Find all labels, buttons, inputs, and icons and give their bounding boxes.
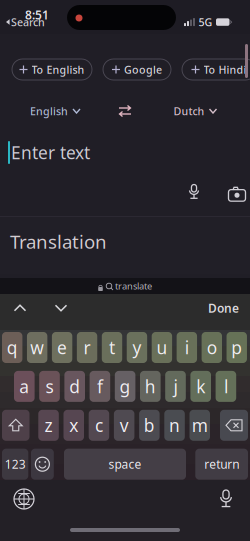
button[interactable]: Switch keyboard (9, 484, 39, 514)
staticText: y (132, 336, 141, 359)
staticText: l (224, 375, 228, 398)
button[interactable]: return (195, 449, 248, 480)
button[interactable]: l (216, 371, 236, 402)
staticText: b (144, 414, 155, 437)
staticText: h (145, 375, 156, 398)
button[interactable]: s (39, 371, 60, 402)
button[interactable]: e (52, 332, 72, 363)
button[interactable]: Swap languages (104, 99, 146, 123)
button[interactable]: Dictate (211, 484, 241, 514)
button[interactable]: z (38, 410, 59, 441)
button[interactable]: w (27, 332, 47, 363)
button[interactable]: Search (6, 16, 45, 28)
button[interactable]: t (102, 332, 122, 363)
button[interactable]: Delete (220, 410, 248, 441)
button[interactable]: To Hindi (182, 59, 250, 80)
staticText: To Hindi (203, 62, 246, 77)
button[interactable]: translate (0, 278, 250, 294)
staticText: Search (11, 15, 45, 29)
staticText: Translation (10, 229, 107, 254)
button[interactable]: space (64, 449, 186, 480)
button[interactable]: f (90, 371, 110, 402)
staticText: i (185, 336, 189, 359)
staticText: o (207, 336, 217, 359)
button[interactable]: v (114, 410, 134, 441)
button[interactable]: n (164, 410, 185, 441)
staticText: a (19, 375, 29, 398)
button[interactable]: b (139, 410, 160, 441)
button[interactable]: Google (103, 59, 171, 80)
button[interactable]: h (140, 371, 161, 402)
button[interactable]: Voice input (182, 180, 206, 204)
button[interactable]: c (89, 410, 109, 441)
button[interactable]: i (177, 332, 197, 363)
staticText: translate (115, 280, 152, 292)
staticText: p (231, 336, 242, 359)
staticText: w (30, 336, 44, 359)
button[interactable]: Next field (50, 297, 72, 319)
staticText: 123 (5, 456, 26, 472)
button[interactable]: Shift (2, 410, 29, 441)
button[interactable]: To English (12, 59, 92, 80)
staticText: Done (208, 300, 239, 316)
button[interactable]: g (115, 371, 135, 402)
button[interactable]: r (77, 332, 97, 363)
staticText: Enter text (11, 141, 90, 164)
staticText: Google (124, 62, 162, 77)
staticText: c (95, 414, 103, 437)
button[interactable]: Done (197, 297, 239, 319)
staticText: r (83, 336, 90, 359)
staticText: g (120, 375, 131, 398)
button[interactable]: k (190, 371, 211, 402)
staticText: n (169, 414, 180, 437)
staticText: space (108, 456, 141, 472)
button[interactable]: m (189, 410, 210, 441)
button[interactable]: q (2, 332, 22, 363)
button[interactable]: Previous field (9, 297, 31, 319)
staticText: j (173, 375, 177, 398)
staticText: q (7, 336, 18, 359)
staticText: e (57, 336, 67, 359)
staticText: m (192, 414, 208, 437)
staticText: 5G (198, 15, 212, 29)
button[interactable]: o (202, 332, 222, 363)
button[interactable]: Camera input (225, 180, 249, 204)
staticText: f (97, 375, 103, 398)
staticText: x (69, 414, 78, 437)
button[interactable]: j (165, 371, 186, 402)
button[interactable]: u (152, 332, 172, 363)
button[interactable]: Emoji (31, 449, 54, 480)
button[interactable]: a (14, 371, 35, 402)
staticText: k (196, 375, 205, 398)
staticText: t (109, 336, 115, 359)
staticText: return (204, 456, 239, 472)
staticText: s (45, 375, 53, 398)
staticText: z (44, 414, 52, 437)
staticText: v (120, 414, 129, 437)
button[interactable]: p (226, 332, 247, 363)
button[interactable]: d (64, 371, 85, 402)
staticText: d (69, 375, 80, 398)
button[interactable]: 123 (2, 449, 28, 480)
button[interactable]: English (6, 99, 104, 123)
button[interactable]: x (63, 410, 84, 441)
staticText: Dutch (173, 104, 204, 118)
staticText: To English (31, 62, 84, 77)
staticText: u (156, 336, 167, 359)
staticText: 8:51 (25, 7, 49, 23)
staticText: English (30, 104, 68, 118)
button[interactable]: Dutch (146, 99, 244, 123)
button[interactable]: y (127, 332, 147, 363)
